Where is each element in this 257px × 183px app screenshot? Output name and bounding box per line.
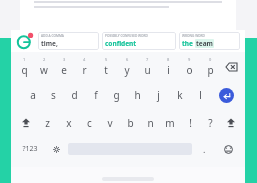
staticText: the	[182, 39, 195, 48]
button[interactable]: ?	[200, 109, 220, 136]
button[interactable]: a	[23, 81, 43, 109]
button[interactable]: h	[127, 81, 148, 109]
staticText: h	[134, 88, 141, 102]
button[interactable]: Enter	[211, 81, 242, 109]
button[interactable]: Settings	[46, 136, 66, 162]
button[interactable]: WRONG WORD	[179, 32, 240, 50]
button[interactable]: n	[140, 109, 160, 136]
staticText: s	[51, 88, 56, 102]
button[interactable]: 3	[54, 52, 74, 81]
staticText: f	[94, 88, 98, 102]
button[interactable]: 2	[34, 52, 54, 81]
button[interactable]: Backspace	[221, 52, 242, 81]
button[interactable]: Shift	[14, 109, 37, 136]
staticText: i	[167, 63, 170, 77]
staticText: z	[45, 116, 50, 130]
staticText: 1	[23, 57, 26, 62]
staticText: t	[104, 63, 108, 77]
button[interactable]: 0	[200, 52, 221, 81]
staticText: ?123	[22, 144, 38, 154]
staticText: .	[203, 143, 206, 155]
button[interactable]: v	[100, 109, 120, 136]
button[interactable]: s	[43, 81, 64, 109]
staticText: e	[61, 63, 67, 77]
button[interactable]: Emoji	[214, 136, 242, 162]
staticText: 5	[105, 57, 108, 62]
button[interactable]: g	[106, 81, 127, 109]
staticText: WRONG WORD	[182, 34, 205, 38]
staticText: n	[147, 116, 154, 130]
button[interactable]: c	[79, 109, 100, 136]
staticText: l	[199, 88, 202, 102]
staticText: b	[127, 116, 134, 130]
staticText: c	[87, 116, 92, 130]
staticText: ADD A COMMA	[41, 34, 64, 38]
staticText: d	[71, 88, 78, 102]
button[interactable]: 4	[74, 52, 95, 81]
button[interactable]: Shift right	[220, 109, 242, 136]
button[interactable]: m	[160, 109, 180, 136]
staticText: a	[30, 88, 36, 102]
staticText: 7	[146, 57, 149, 62]
staticText: !	[189, 116, 192, 130]
button[interactable]: f	[85, 81, 106, 109]
button[interactable]: !	[180, 109, 200, 136]
staticText: 3	[63, 57, 66, 62]
staticText: 8	[167, 57, 170, 62]
staticText: p	[207, 63, 214, 77]
button[interactable]: j	[148, 81, 169, 109]
staticText: 0	[209, 57, 212, 62]
button[interactable]: Grammarly	[16, 32, 34, 50]
button[interactable]: z	[37, 109, 58, 136]
staticText: time,	[41, 39, 58, 48]
staticText: y	[124, 63, 130, 77]
button[interactable]: ADD A COMMA	[38, 32, 99, 50]
staticText: 2	[43, 57, 46, 62]
staticText: k	[177, 88, 183, 102]
button[interactable]: 8	[158, 52, 179, 81]
staticText: w	[40, 63, 48, 77]
staticText: v	[107, 116, 113, 130]
staticText: x	[66, 116, 72, 130]
staticText: u	[144, 63, 151, 77]
staticText: 4	[83, 57, 86, 62]
button[interactable]: 1	[14, 52, 34, 81]
staticText: j	[157, 88, 160, 102]
staticText: q	[21, 63, 28, 77]
staticText: 9	[188, 57, 191, 62]
staticText: 6	[126, 57, 129, 62]
button[interactable]: .	[194, 136, 214, 162]
staticText: ?	[208, 116, 213, 130]
button[interactable]: 6	[116, 52, 137, 81]
staticText: m	[165, 116, 175, 130]
button[interactable]: k	[169, 81, 190, 109]
staticText: confident	[105, 39, 137, 48]
button[interactable]: ?123	[14, 136, 46, 162]
button[interactable]: 7	[137, 52, 158, 81]
button[interactable]: b	[120, 109, 140, 136]
staticText: POSSIBLY CONFUSED WORD	[105, 34, 148, 38]
button[interactable]: x	[58, 109, 79, 136]
button[interactable]: l	[190, 81, 211, 109]
button[interactable]: 5	[95, 52, 116, 81]
staticText: r	[82, 63, 87, 77]
button[interactable]: d	[64, 81, 85, 109]
staticText: o	[186, 63, 193, 77]
staticText: team	[196, 39, 213, 48]
button[interactable]: POSSIBLY CONFUSED WORD	[102, 32, 176, 50]
staticText: g	[113, 88, 120, 102]
button[interactable]: 9	[179, 52, 200, 81]
